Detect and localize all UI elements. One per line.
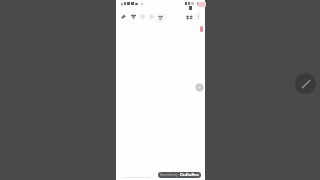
- staticText: DuDuRec: [180, 172, 199, 178]
- button[interactable]: Print: [139, 13, 146, 20]
- button[interactable]: Search: [148, 13, 155, 20]
- button[interactable]: Text: [130, 13, 137, 20]
- button[interactable]: Scroll handle: [195, 83, 204, 92]
- button[interactable]: Next: [295, 73, 316, 94]
- staticText: Recorded by: [160, 173, 178, 177]
- button[interactable]: More options: [195, 13, 201, 20]
- button[interactable]: Save: [185, 14, 193, 21]
- button[interactable]: [154, 13, 167, 22]
- button[interactable]: Draw: [120, 13, 127, 20]
